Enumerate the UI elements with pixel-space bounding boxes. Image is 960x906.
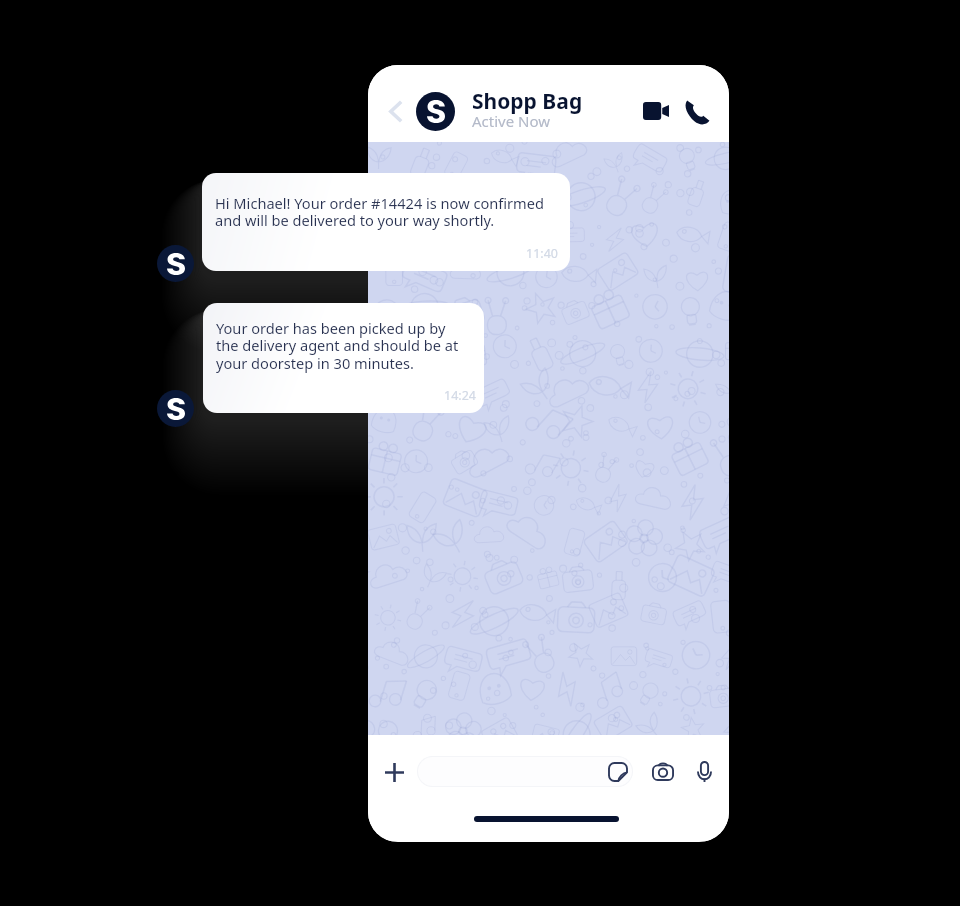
staticText: Hi Michael! Your order #14424 is now con… (215, 193, 544, 230)
staticText: Shopp Bag (472, 87, 583, 116)
staticText: 11:40 (526, 245, 558, 262)
button[interactable]: Shopp Bag (157, 390, 194, 427)
button[interactable]: Video call (637, 92, 675, 130)
button[interactable]: Hi Michael! Your order #14424 is now con… (202, 173, 570, 271)
staticText: Active Now (472, 111, 551, 131)
button[interactable]: Sticker (600, 754, 636, 790)
button[interactable]: Shopp Bag (157, 245, 194, 282)
staticText: 14:24 (444, 387, 476, 404)
button[interactable]: Attach (375, 753, 413, 791)
staticText: Your order has been picked up by the del… (216, 318, 459, 373)
button[interactable]: Camera (645, 753, 681, 789)
button[interactable]: Your order has been picked up by the del… (203, 303, 484, 413)
button[interactable]: Back (378, 93, 414, 129)
button[interactable]: Message input (417, 756, 633, 787)
button[interactable]: Shopp Bag avatar (416, 92, 455, 131)
button[interactable]: Voice message (686, 754, 722, 790)
button[interactable]: Voice call (678, 93, 716, 131)
